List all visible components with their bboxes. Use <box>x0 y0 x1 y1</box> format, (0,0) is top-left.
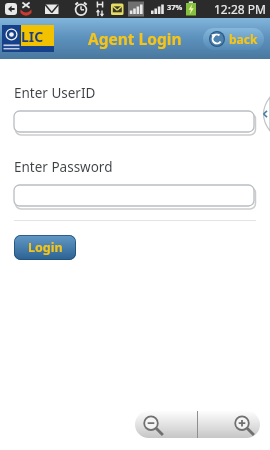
button[interactable]: Zoom out <box>135 411 197 438</box>
staticText: Enter Password <box>14 158 113 176</box>
staticText: Agent Login <box>88 28 182 49</box>
button[interactable]: back <box>203 28 264 50</box>
button[interactable]: Zoom in <box>198 411 260 438</box>
staticText: LIC <box>21 27 44 46</box>
staticText: Enter UserID <box>14 84 96 102</box>
button[interactable] <box>14 111 256 135</box>
staticText: 12:28 PM <box>214 1 266 17</box>
button[interactable]: Login <box>14 235 76 260</box>
button[interactable]: Open panel <box>258 97 270 131</box>
staticText: Login <box>28 239 63 256</box>
staticText: back <box>229 31 258 47</box>
button[interactable] <box>14 185 256 209</box>
staticText: 37% <box>167 2 183 12</box>
